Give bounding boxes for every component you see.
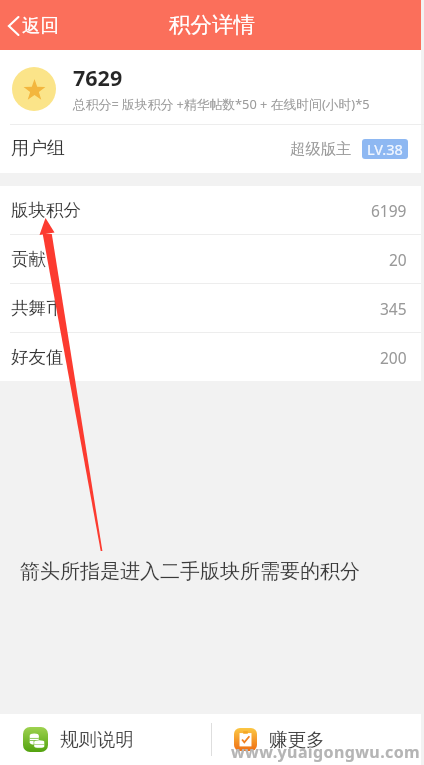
staticText: 345: [380, 298, 407, 319]
button[interactable]: 贡献: [0, 235, 421, 283]
staticText: 贡献: [11, 248, 46, 270]
other: Back: [8, 16, 19, 36]
button[interactable]: Earn more: [210, 714, 421, 765]
staticText: 箭头所指是进入二手版块所需要的积分: [20, 559, 360, 584]
button[interactable]: 共舞币: [0, 284, 421, 332]
staticText: 7629: [73, 63, 123, 92]
staticText: 返回: [22, 14, 59, 37]
staticText: 规则说明: [60, 728, 134, 751]
staticText: 200: [380, 347, 407, 368]
button[interactable]: Back: [0, 6, 71, 45]
staticText: 总积分= 版块积分 +精华帖数*50 + 在线时间(小时)*5: [73, 95, 370, 112]
staticText: 超级版主: [290, 139, 352, 158]
staticText: LV.38: [367, 139, 403, 159]
staticText: 赚更多: [269, 728, 325, 751]
button[interactable]: 版块积分: [0, 186, 421, 234]
button[interactable]: Rules: [0, 714, 210, 765]
staticText: 共舞币: [11, 297, 64, 319]
button[interactable]: 用户组: [0, 124, 421, 173]
staticText: 20: [389, 249, 407, 270]
other: Rules: [23, 727, 48, 752]
staticText: 6199: [371, 200, 407, 221]
other: Earn more: [234, 728, 257, 751]
staticText: 好友值: [11, 346, 64, 368]
staticText: 积分详情: [169, 11, 255, 38]
staticText: 用户组: [11, 137, 65, 160]
button[interactable]: 好友值: [0, 333, 421, 381]
staticText: 版块积分: [11, 199, 81, 221]
staticText: www.yuaigongwu.com: [231, 741, 421, 763]
